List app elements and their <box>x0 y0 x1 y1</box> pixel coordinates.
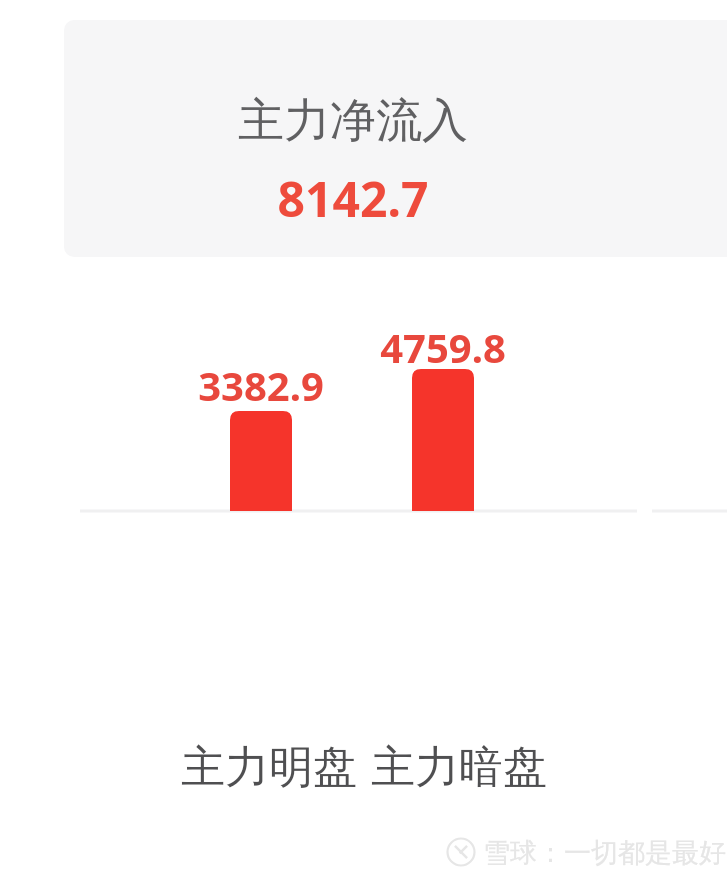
button[interactable]: 主力暗盘 <box>371 740 547 795</box>
button[interactable]: 主力明盘 <box>181 740 357 795</box>
staticText: 主力明盘 <box>181 740 357 795</box>
staticText: 4759.8 <box>323 320 563 374</box>
button[interactable]: 主力净流入 <box>64 20 727 257</box>
staticText: 8142.7 <box>64 166 642 231</box>
staticText: 雪球：一切都是最好的az7 <box>483 833 727 870</box>
staticText: 主力净流入 <box>64 92 642 150</box>
other: Xueqiu logo <box>446 837 476 867</box>
staticText: 主力暗盘 <box>371 740 547 795</box>
staticText: 3382.9 <box>141 358 381 412</box>
